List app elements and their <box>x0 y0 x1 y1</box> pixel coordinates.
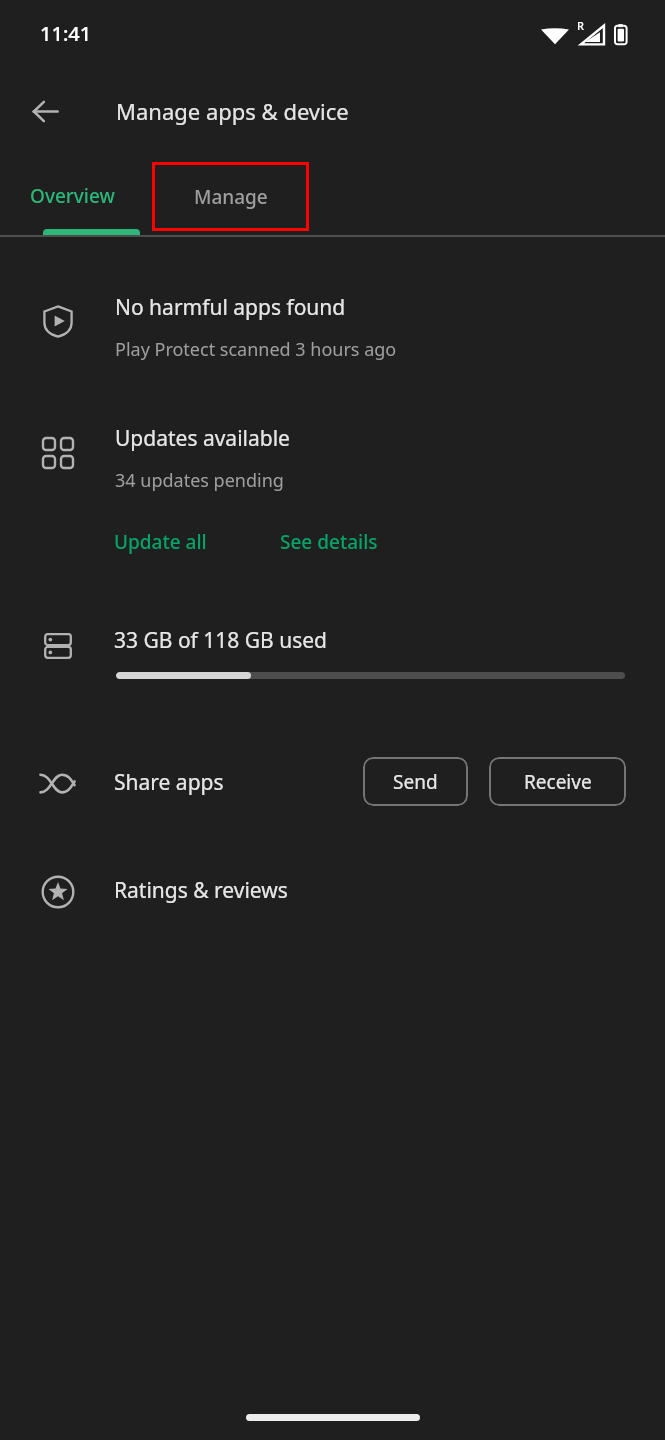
button[interactable]: Update all <box>100 518 220 566</box>
staticText: No harmful apps found <box>115 293 346 322</box>
button[interactable]: 33 GB of 118 GB used <box>0 612 665 708</box>
button[interactable]: Overview <box>8 163 136 229</box>
button[interactable]: Send <box>363 757 468 806</box>
button[interactable]: Receive <box>489 757 626 806</box>
staticText: 34 updates pending <box>115 468 284 493</box>
staticText: See details <box>280 529 378 555</box>
staticText: Updates available <box>115 424 290 453</box>
staticText: Update all <box>114 529 207 555</box>
staticText: Manage apps & device <box>116 96 349 126</box>
staticText: Overview <box>30 183 115 209</box>
button[interactable]: See details <box>252 518 406 566</box>
staticText: 33 GB of 118 GB used <box>114 626 327 655</box>
staticText: 11:41 <box>40 20 92 47</box>
button[interactable]: Ratings & reviews <box>0 858 665 926</box>
button[interactable]: Updates available <box>0 408 665 508</box>
button[interactable]: Back <box>22 88 69 135</box>
staticText: Play Protect scanned 3 hours ago <box>115 337 397 362</box>
staticText: Manage <box>194 184 268 210</box>
staticText: Share apps <box>114 768 224 797</box>
staticText: Ratings & reviews <box>114 876 288 905</box>
staticText: Send <box>393 769 438 795</box>
button[interactable]: Manage <box>152 162 309 231</box>
staticText: Receive <box>524 769 592 795</box>
staticText: R <box>577 18 584 33</box>
button[interactable]: No harmful apps found <box>0 276 665 376</box>
